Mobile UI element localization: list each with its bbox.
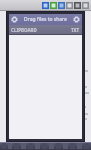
staticText: CLIPBOARD — [11, 27, 37, 33]
button[interactable]: Drag files to share — [9, 14, 82, 25]
button[interactable]: Window menu — [73, 16, 80, 23]
staticText: TXT — [71, 27, 80, 33]
staticText: Drag files to share — [24, 16, 67, 23]
button[interactable]: Tray icon — [42, 2, 49, 9]
button[interactable]: Tray icon — [74, 2, 81, 9]
button[interactable]: CLIPBOARD — [9, 25, 82, 35]
button[interactable]: Tray icon — [66, 2, 73, 9]
button[interactable]: Tray icon — [58, 2, 65, 9]
button[interactable]: Settings — [11, 16, 18, 23]
button[interactable]: Tray icon — [50, 2, 57, 9]
button[interactable]: Tray icon — [82, 2, 89, 9]
